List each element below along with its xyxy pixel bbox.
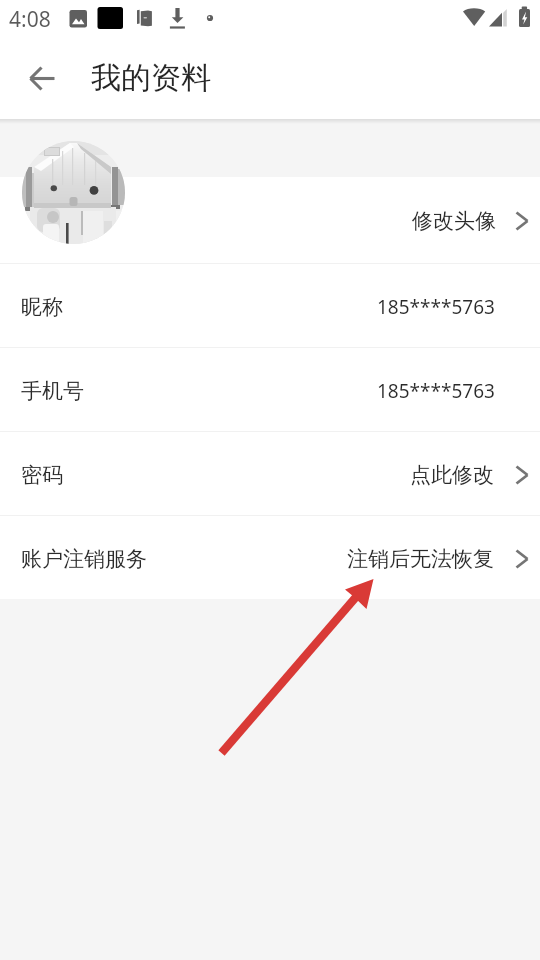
button[interactable]: 手机号 bbox=[0, 348, 540, 431]
staticText: 我的资料 bbox=[91, 59, 211, 97]
button[interactable]: Avatar bbox=[22, 141, 125, 244]
staticText: 昵称 bbox=[21, 294, 63, 320]
staticText: 修改头像 bbox=[412, 208, 496, 234]
staticText: 手机号 bbox=[21, 378, 84, 404]
staticText: 点此修改 bbox=[410, 462, 494, 488]
button[interactable]: 修改头像 bbox=[0, 177, 540, 263]
staticText: 账户注销服务 bbox=[21, 546, 147, 572]
button[interactable]: 账户注销服务 bbox=[0, 516, 540, 599]
staticText: 注销后无法恢复 bbox=[347, 546, 494, 572]
button[interactable]: Back bbox=[18, 55, 64, 101]
staticText: 4:08 bbox=[9, 5, 51, 34]
staticText: 185****5763 bbox=[377, 294, 495, 320]
staticText: 185****5763 bbox=[377, 378, 495, 404]
button[interactable]: 密码 bbox=[0, 432, 540, 515]
staticText: 密码 bbox=[21, 462, 63, 488]
button[interactable]: 昵称 bbox=[0, 264, 540, 347]
